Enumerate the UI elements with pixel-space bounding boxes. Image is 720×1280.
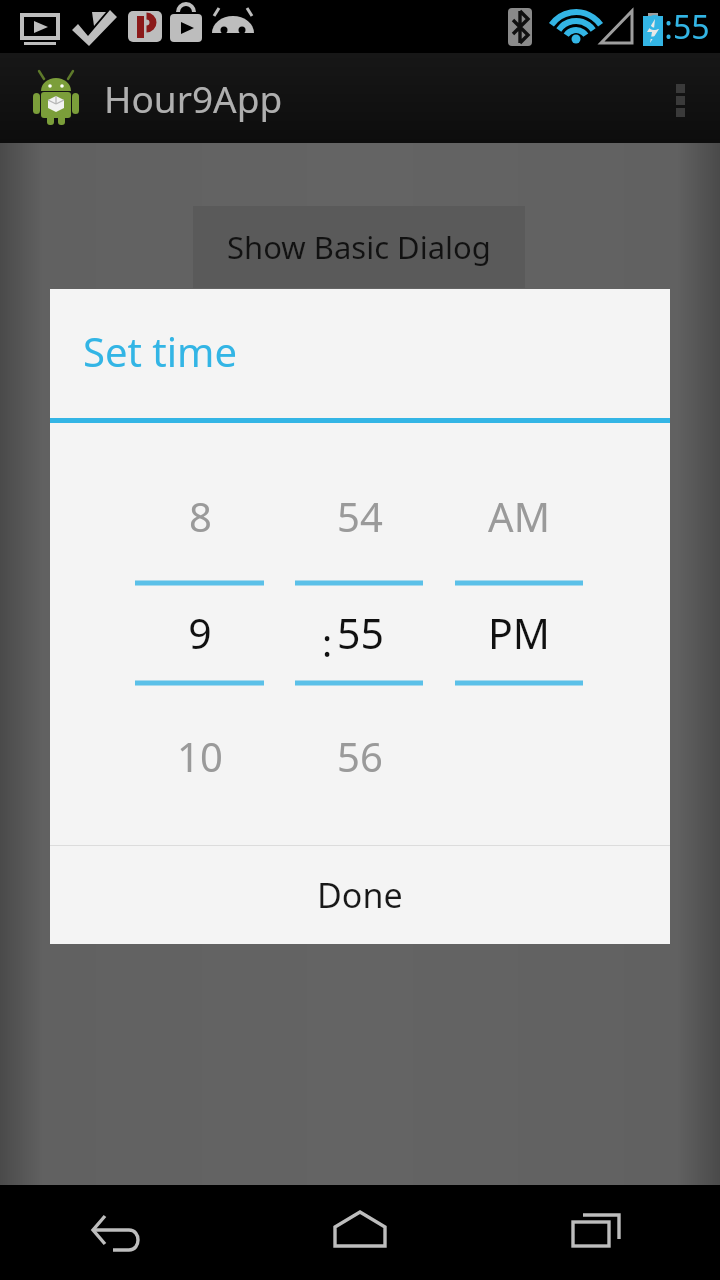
staticText: 55 [337,605,384,661]
button[interactable]: 8 [130,456,270,576]
staticText: Show Basic Dialog [227,226,491,268]
staticText: 56 [337,729,383,783]
button[interactable]: 55 [290,583,430,683]
staticText: Done [317,872,403,918]
button[interactable]: 54 [290,456,430,576]
staticText: 10 [177,729,223,783]
button[interactable]: Back [0,1185,240,1280]
staticText: AM [488,489,550,543]
staticText: 9 [188,605,212,661]
button[interactable]: Recent apps [480,1185,720,1280]
button[interactable]: 9 [130,583,270,683]
staticText: 9:55 [646,5,710,49]
button[interactable]: Home [240,1185,480,1280]
staticText: : [322,616,333,668]
button[interactable]: 56 [290,696,430,816]
button[interactable]: More options [640,53,720,143]
staticText: 8 [189,489,212,543]
button[interactable]: Done [50,846,670,944]
button[interactable]: PM [449,583,589,683]
staticText: Set time [83,324,238,378]
button[interactable]: Show Basic Dialog [193,206,525,288]
staticText: Hour9App [104,73,283,123]
button[interactable]: 10 [130,696,270,816]
staticText: PM [488,605,550,661]
staticText: 54 [337,489,383,543]
button[interactable]: AM [449,456,589,576]
